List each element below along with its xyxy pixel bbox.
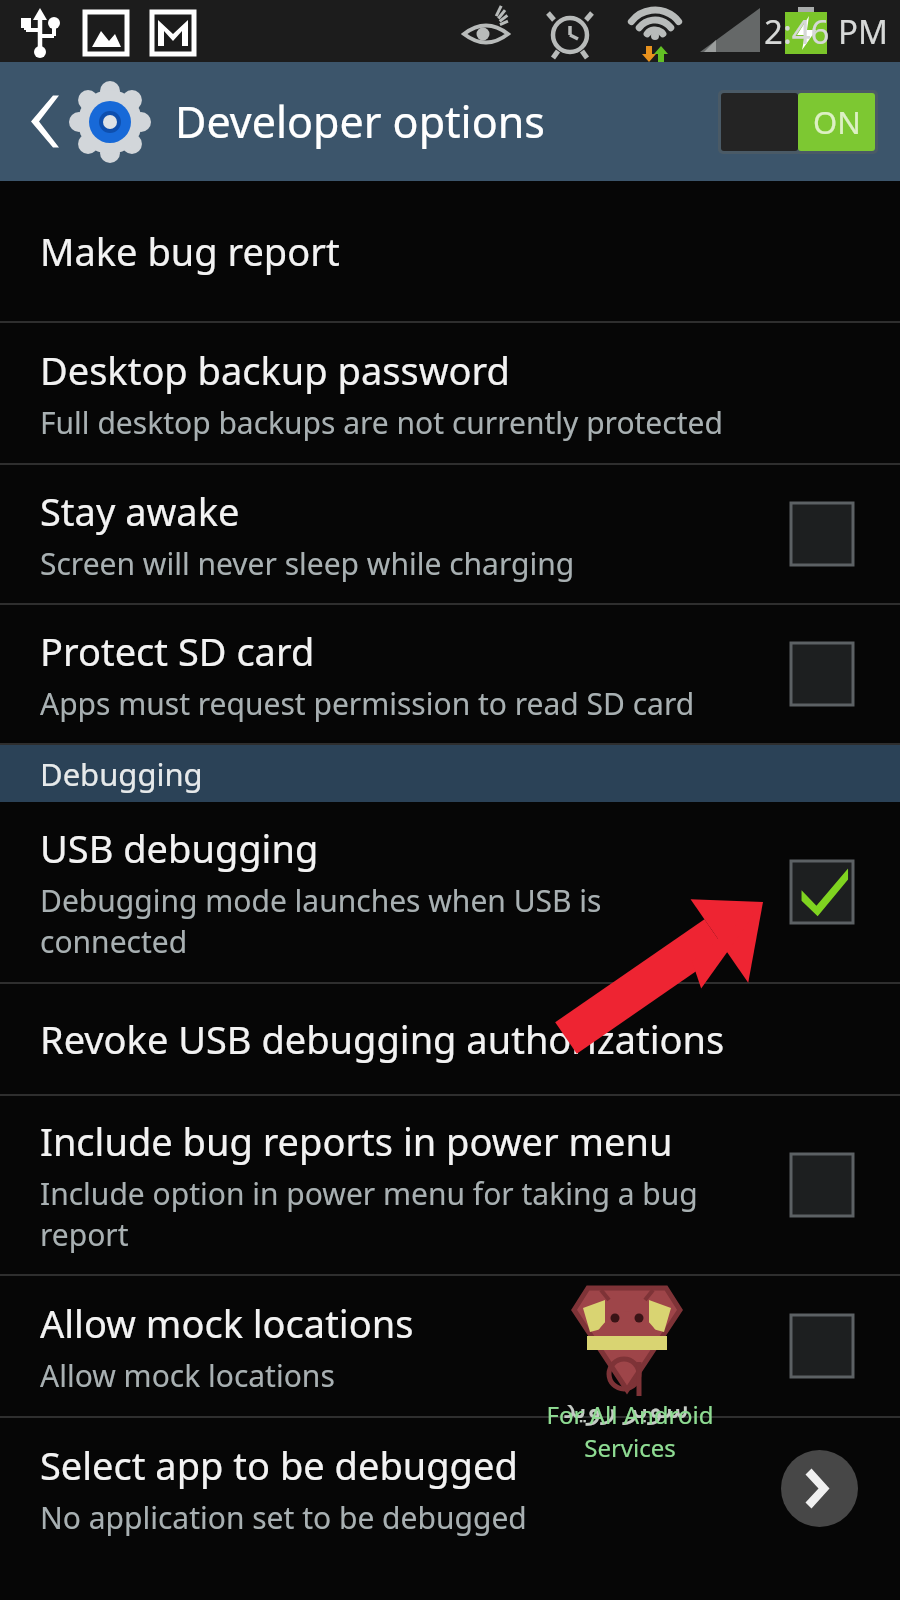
button[interactable]: Include bug reports in power menu	[0, 1096, 900, 1274]
staticText: Revoke USB debugging authorizations	[40, 1013, 725, 1065]
staticText: Protect SD card	[40, 625, 315, 677]
button[interactable]: Back	[0, 62, 160, 181]
button[interactable]: Stay awake	[0, 465, 900, 603]
staticText: Full desktop backups are not currently p…	[40, 402, 723, 443]
button[interactable]: Make bug report	[0, 181, 900, 321]
button[interactable]: Select app to be debugged	[0, 1418, 900, 1558]
button[interactable]: Checked	[791, 861, 853, 923]
staticText: 2:46 PM	[764, 9, 888, 54]
staticText: ON	[813, 101, 861, 143]
button[interactable]: Revoke USB debugging authorizations	[0, 984, 900, 1094]
staticText: Debugging	[40, 753, 203, 795]
staticText: Allow mock locations	[40, 1355, 335, 1396]
staticText: report	[40, 1214, 129, 1255]
button[interactable]: USB debugging	[0, 802, 900, 982]
button[interactable]: Unchecked	[791, 503, 853, 565]
button[interactable]: Desktop backup password	[0, 323, 900, 463]
staticText: Developer options	[175, 92, 545, 151]
staticText: Select app to be debugged	[40, 1439, 518, 1491]
button[interactable]: Protect SD card	[0, 605, 900, 743]
staticText: Make bug report	[40, 225, 340, 277]
button[interactable]: Unchecked	[791, 643, 853, 705]
staticText: For All Android Services	[505, 1398, 755, 1464]
staticText: Apps must request permission to read SD …	[40, 683, 695, 724]
staticText: Desktop backup password	[40, 344, 510, 396]
button[interactable]: Allow mock locations	[0, 1276, 900, 1416]
staticText: USB debugging	[40, 822, 319, 874]
staticText: Include bug reports in power menu	[40, 1115, 673, 1167]
staticText: Debugging mode launches when USB is	[40, 880, 602, 921]
staticText: connected	[40, 921, 188, 962]
staticText: Allow mock locations	[40, 1297, 414, 1349]
staticText: سوبر رويد	[551, 1386, 701, 1427]
staticText: Include option in power menu for taking …	[40, 1173, 698, 1214]
staticText: Screen will never sleep while charging	[40, 543, 575, 584]
button[interactable]: Developer options on	[718, 90, 878, 154]
staticText: No application set to be debugged	[40, 1497, 527, 1538]
button[interactable]: Open	[781, 1450, 858, 1527]
button[interactable]: Unchecked	[791, 1315, 853, 1377]
button[interactable]: Unchecked	[791, 1154, 853, 1216]
staticText: Stay awake	[40, 485, 240, 537]
